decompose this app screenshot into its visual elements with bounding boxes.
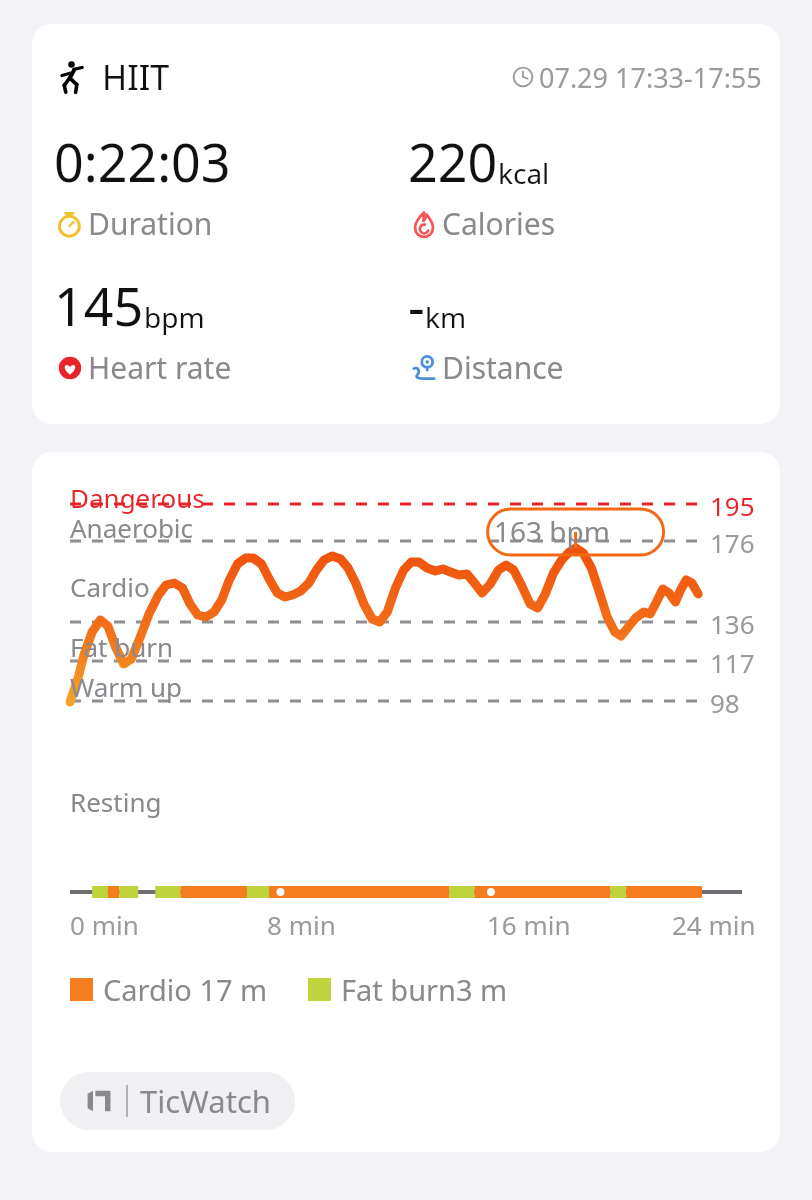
staticText: 163 bpm bbox=[494, 512, 610, 550]
staticText: Warm up bbox=[70, 669, 183, 704]
other: Workout type bbox=[54, 58, 92, 96]
staticText: 176 bbox=[710, 525, 755, 560]
button[interactable]: Workout type bbox=[32, 24, 780, 424]
staticText: Calories bbox=[442, 203, 556, 244]
staticText: 145 bbox=[54, 270, 144, 341]
staticText: bpm bbox=[144, 298, 205, 336]
staticText: 98 bbox=[710, 685, 740, 720]
staticText: 07.29 17:33-17:55 bbox=[539, 59, 762, 96]
button[interactable]: 0:22:03 bbox=[54, 126, 408, 244]
staticText: 195 bbox=[710, 488, 755, 523]
staticText: 8 min bbox=[267, 907, 336, 942]
button[interactable]: Fat burn3 m bbox=[308, 970, 508, 1009]
button[interactable]: Cardio 17 m bbox=[70, 970, 268, 1009]
staticText: 24 min bbox=[672, 907, 756, 942]
staticText: 0 min bbox=[70, 907, 139, 942]
staticText: Resting bbox=[70, 784, 162, 819]
staticText: Anaerobic bbox=[70, 510, 194, 545]
staticText: 117 bbox=[710, 645, 755, 680]
staticText: - bbox=[408, 270, 425, 341]
staticText: 0:22:03 bbox=[54, 126, 231, 197]
staticText: Distance bbox=[442, 347, 564, 388]
staticText: Cardio 17 m bbox=[103, 970, 268, 1009]
button[interactable]: - bbox=[408, 270, 762, 388]
button[interactable]: 220 bbox=[408, 126, 762, 244]
staticText: 16 min bbox=[487, 907, 571, 942]
staticText: 220 bbox=[408, 126, 498, 197]
staticText: km bbox=[425, 298, 467, 336]
staticText: Duration bbox=[88, 203, 213, 244]
staticText: Fat burn bbox=[70, 629, 174, 664]
staticText: Cardio bbox=[70, 569, 150, 604]
staticText: Heart rate bbox=[88, 347, 232, 388]
staticText: TicWatch bbox=[140, 1080, 271, 1122]
staticText: 136 bbox=[710, 606, 755, 641]
staticText: Fat burn3 m bbox=[341, 970, 508, 1009]
button[interactable]: 145 bbox=[54, 270, 408, 388]
button[interactable]: Dangerous bbox=[32, 452, 780, 1152]
staticText: Dangerous bbox=[70, 480, 205, 515]
staticText: HIIT bbox=[102, 54, 170, 100]
staticText: kcal bbox=[498, 154, 550, 192]
button[interactable]: TicWatch bbox=[60, 1072, 295, 1130]
